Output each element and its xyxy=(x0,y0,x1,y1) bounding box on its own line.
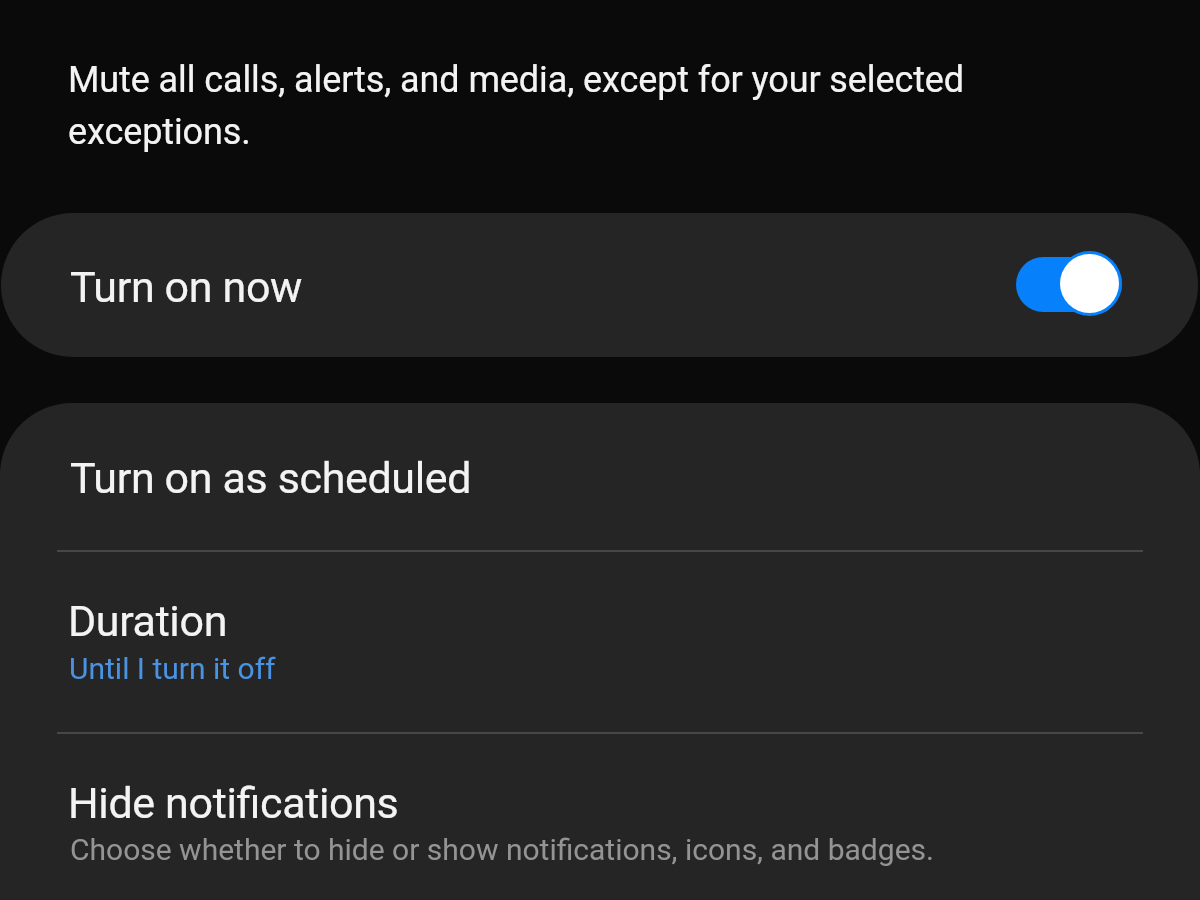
button[interactable]: Turn on as scheduled xyxy=(0,403,1200,551)
button[interactable]: Duration xyxy=(0,551,1200,733)
staticText: Until I turn it off xyxy=(69,650,276,686)
staticText: Hide notifications xyxy=(68,777,399,829)
staticText: Duration xyxy=(68,595,228,647)
staticText: Choose whether to hide or show notificat… xyxy=(70,831,934,867)
button[interactable]: Turn on now xyxy=(1,213,1198,357)
staticText: Turn on as scheduled xyxy=(70,452,472,504)
button[interactable]: Hide notifications xyxy=(0,733,1200,900)
staticText: Turn on now xyxy=(70,261,303,313)
staticText: Mute all calls, alerts, and media, excep… xyxy=(68,51,1018,155)
button[interactable]: Turn on Do not disturb now xyxy=(1008,246,1131,324)
